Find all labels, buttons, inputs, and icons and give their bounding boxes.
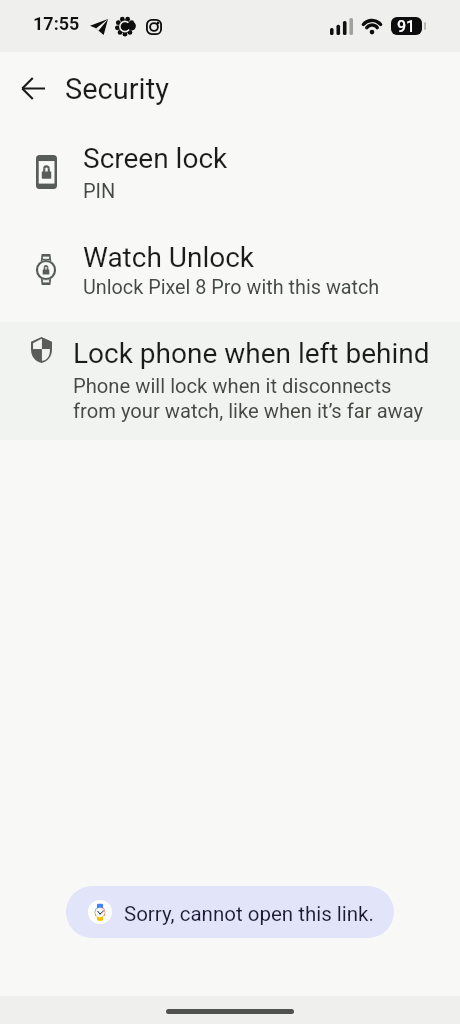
button[interactable]: Back xyxy=(11,66,55,110)
button[interactable]: Home xyxy=(166,1009,294,1014)
staticText: Security xyxy=(65,72,169,106)
staticText: Watch Unlock xyxy=(83,241,255,274)
staticText: 91 xyxy=(397,17,416,35)
staticText: 17:55 xyxy=(33,13,80,34)
staticText: Sorry, cannot open this link. xyxy=(124,902,374,926)
button[interactable]: Screen lock xyxy=(0,122,460,220)
staticText: Screen lock xyxy=(83,142,228,175)
staticText: PIN xyxy=(83,179,116,202)
button[interactable]: Sorry, cannot open this link. xyxy=(66,886,394,938)
staticText: Lock phone when left behind xyxy=(73,337,430,370)
staticText: Unlock Pixel 8 Pro with this watch xyxy=(83,276,380,299)
button[interactable]: Lock phone when left behind xyxy=(0,322,460,440)
staticText: Phone will lock when it disconnects from… xyxy=(73,374,424,423)
button[interactable]: Watch Unlock xyxy=(0,220,460,320)
